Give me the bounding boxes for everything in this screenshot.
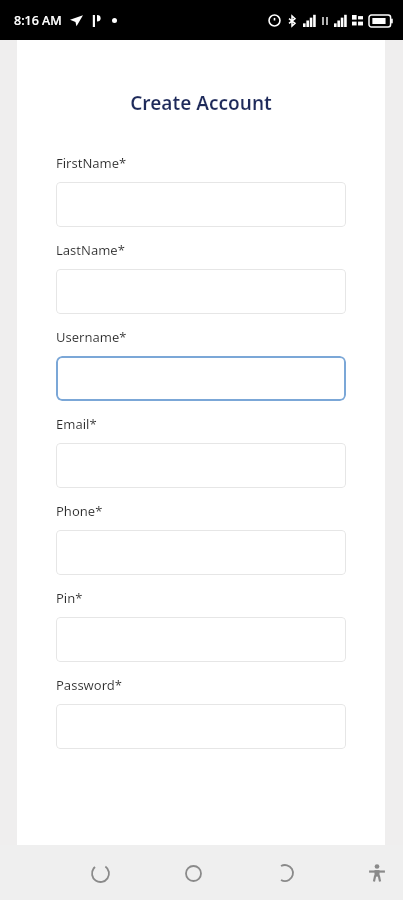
button[interactable] — [56, 704, 346, 749]
button[interactable]: Home — [171, 851, 215, 895]
staticText: Phone* — [56, 502, 103, 520]
button[interactable]: LastName* — [56, 241, 346, 328]
button[interactable]: Email* — [56, 415, 346, 502]
button[interactable] — [56, 356, 346, 401]
button[interactable] — [56, 617, 346, 662]
button[interactable] — [56, 530, 346, 575]
staticText: Create Account — [17, 90, 385, 116]
staticText: Email* — [56, 415, 97, 433]
button[interactable]: Accessibility — [355, 851, 399, 895]
button[interactable] — [56, 443, 346, 488]
button[interactable]: Pin* — [56, 589, 346, 676]
staticText: FirstName* — [56, 154, 127, 172]
button[interactable] — [56, 269, 346, 314]
button[interactable]: Password* — [56, 676, 346, 763]
button[interactable]: Recent apps — [263, 851, 307, 895]
button[interactable] — [56, 182, 346, 227]
staticText: LastName* — [56, 241, 125, 259]
staticText: 8:16 AM — [14, 12, 62, 29]
staticText: Username* — [56, 328, 127, 346]
button[interactable]: Phone* — [56, 502, 346, 589]
staticText: Password* — [56, 676, 122, 694]
button[interactable]: Username* — [56, 328, 346, 415]
staticText: Pin* — [56, 589, 83, 607]
button[interactable]: Back — [78, 851, 122, 895]
button[interactable]: FirstName* — [56, 154, 346, 241]
